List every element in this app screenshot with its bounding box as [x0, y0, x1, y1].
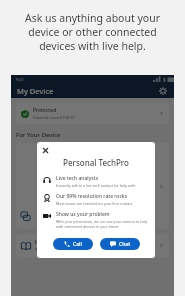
button[interactable]: Show us your problem: [37, 211, 155, 229]
button[interactable]: Settings: [157, 85, 168, 96]
staticText: Protected: [33, 107, 57, 114]
button[interactable]: Protected: [16, 103, 169, 124]
staticText: For Your Device: [16, 131, 61, 139]
button[interactable]: Live tech analysts: [37, 175, 155, 188]
button[interactable]: Call: [53, 238, 93, 250]
staticText: Covered since 07/4/19: [33, 115, 75, 120]
staticText: My Device: [17, 86, 54, 96]
staticText: 9:41: [16, 77, 24, 82]
staticText: Chat: [119, 241, 131, 248]
button[interactable]: Close: [40, 145, 50, 155]
button[interactable]: Chat: [100, 238, 140, 250]
button[interactable]: How-To Guides and Troubleshoot: [16, 234, 169, 257]
staticText: Show us your problem: [56, 211, 110, 218]
staticText: Instantly talk to a live tech analyst fo…: [56, 183, 136, 188]
staticText: How-To Guides and Troubleshoot: [35, 239, 114, 246]
button[interactable]: Our 99% resolution rate rocks: [37, 193, 155, 206]
staticText: With your permission, we can use your ca…: [56, 219, 149, 229]
staticText: Live tech analysts: [56, 175, 99, 182]
staticText: Solve issues and learn more about your d…: [35, 247, 123, 252]
staticText: Most issues are resolved on your first c…: [56, 201, 133, 206]
staticText: Call: [73, 241, 82, 248]
button[interactable]: [16, 143, 169, 229]
staticText: Our 99% resolution rate rocks: [56, 193, 128, 200]
staticText: Personal TechPro: [37, 157, 155, 168]
staticText: Ask us anything about your device or oth…: [25, 11, 160, 53]
